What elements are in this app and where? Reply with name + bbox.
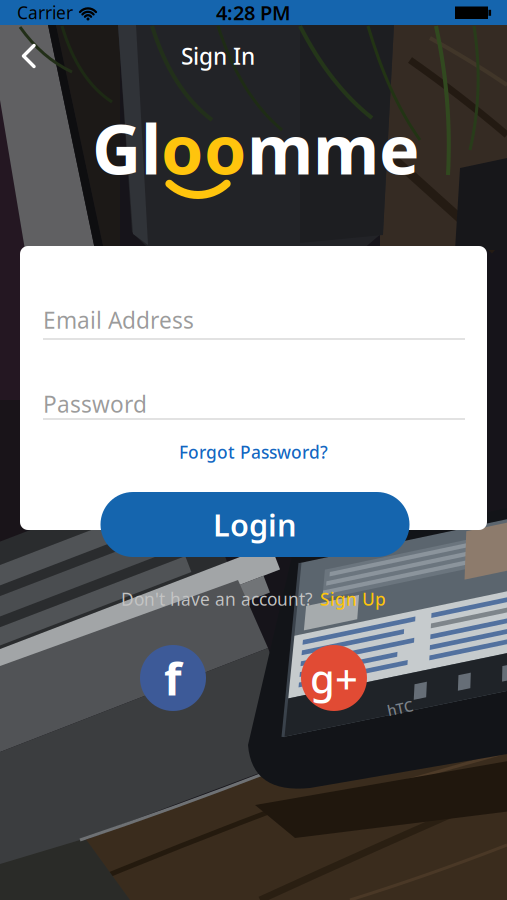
- staticText: Sign In: [181, 41, 255, 71]
- button[interactable]: Email Address: [43, 298, 465, 342]
- staticText: 4:28 PM: [216, 0, 291, 26]
- staticText: Sign Up: [320, 587, 386, 610]
- button[interactable]: Password: [43, 382, 465, 426]
- staticText: mme: [247, 103, 420, 193]
- staticText: Forgot Password?: [179, 440, 328, 463]
- button[interactable]: [21, 44, 36, 67]
- button[interactable]: g+: [301, 645, 367, 711]
- staticText: Carrier: [17, 1, 73, 24]
- staticText: hTC: [387, 698, 413, 718]
- staticText: g+: [310, 651, 358, 704]
- button[interactable]: Sign Up: [320, 587, 386, 610]
- button[interactable]: Login: [100, 492, 409, 557]
- staticText: Password: [43, 389, 147, 419]
- button[interactable]: Forgot Password?: [179, 437, 328, 467]
- button[interactable]: f: [140, 645, 206, 711]
- staticText: Email Address: [43, 305, 194, 335]
- staticText: f: [164, 648, 182, 708]
- staticText: Login: [213, 504, 297, 545]
- staticText: Don't have an account?: [121, 587, 313, 610]
- staticText: Gl: [92, 103, 161, 193]
- staticText: oo: [161, 103, 247, 193]
